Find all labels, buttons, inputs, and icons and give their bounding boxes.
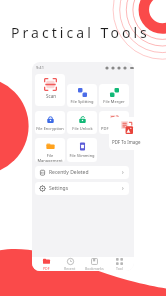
button[interactable]: PDF To Image — [109, 117, 144, 150]
button[interactable]: Tool — [107, 258, 132, 271]
staticText: Scan — [46, 93, 56, 99]
staticText: PDF — [43, 266, 50, 271]
button[interactable]: File Slimming — [67, 138, 97, 162]
staticText: Tool — [116, 266, 123, 271]
staticText: Recently Deleted — [49, 169, 89, 176]
staticText: File Slimming — [69, 153, 95, 158]
button[interactable]: Scan — [35, 74, 65, 106]
staticText: File Management — [37, 153, 63, 162]
staticText: Practical Tools — [11, 23, 150, 42]
button[interactable]: File Splitting — [67, 84, 97, 107]
staticText: 9:41 — [36, 65, 44, 70]
staticText: Settings — [49, 185, 69, 192]
staticText: File Unlock — [72, 126, 93, 131]
button[interactable]: File Management — [35, 138, 65, 162]
button[interactable]: File Encryption — [35, 111, 65, 134]
button[interactable]: Settings — [35, 182, 129, 195]
staticText: PDF To Image — [101, 126, 127, 131]
staticText: File Splitting — [70, 99, 94, 104]
button[interactable]: File Unlock — [67, 111, 97, 134]
staticText: PDF To Image — [112, 139, 141, 145]
staticText: Recent — [64, 266, 76, 271]
button[interactable]: File Merger — [99, 84, 129, 107]
staticText: File Encryption — [36, 126, 64, 131]
button[interactable]: Bookmarks — [82, 258, 107, 271]
button[interactable]: Recent — [58, 258, 82, 271]
button[interactable]: PDF To Image — [99, 111, 129, 134]
button[interactable]: Recently Deleted — [35, 166, 129, 179]
staticText: File Merger — [103, 99, 125, 104]
button[interactable]: PDF — [34, 258, 58, 271]
staticText: Bookmarks — [85, 266, 104, 271]
